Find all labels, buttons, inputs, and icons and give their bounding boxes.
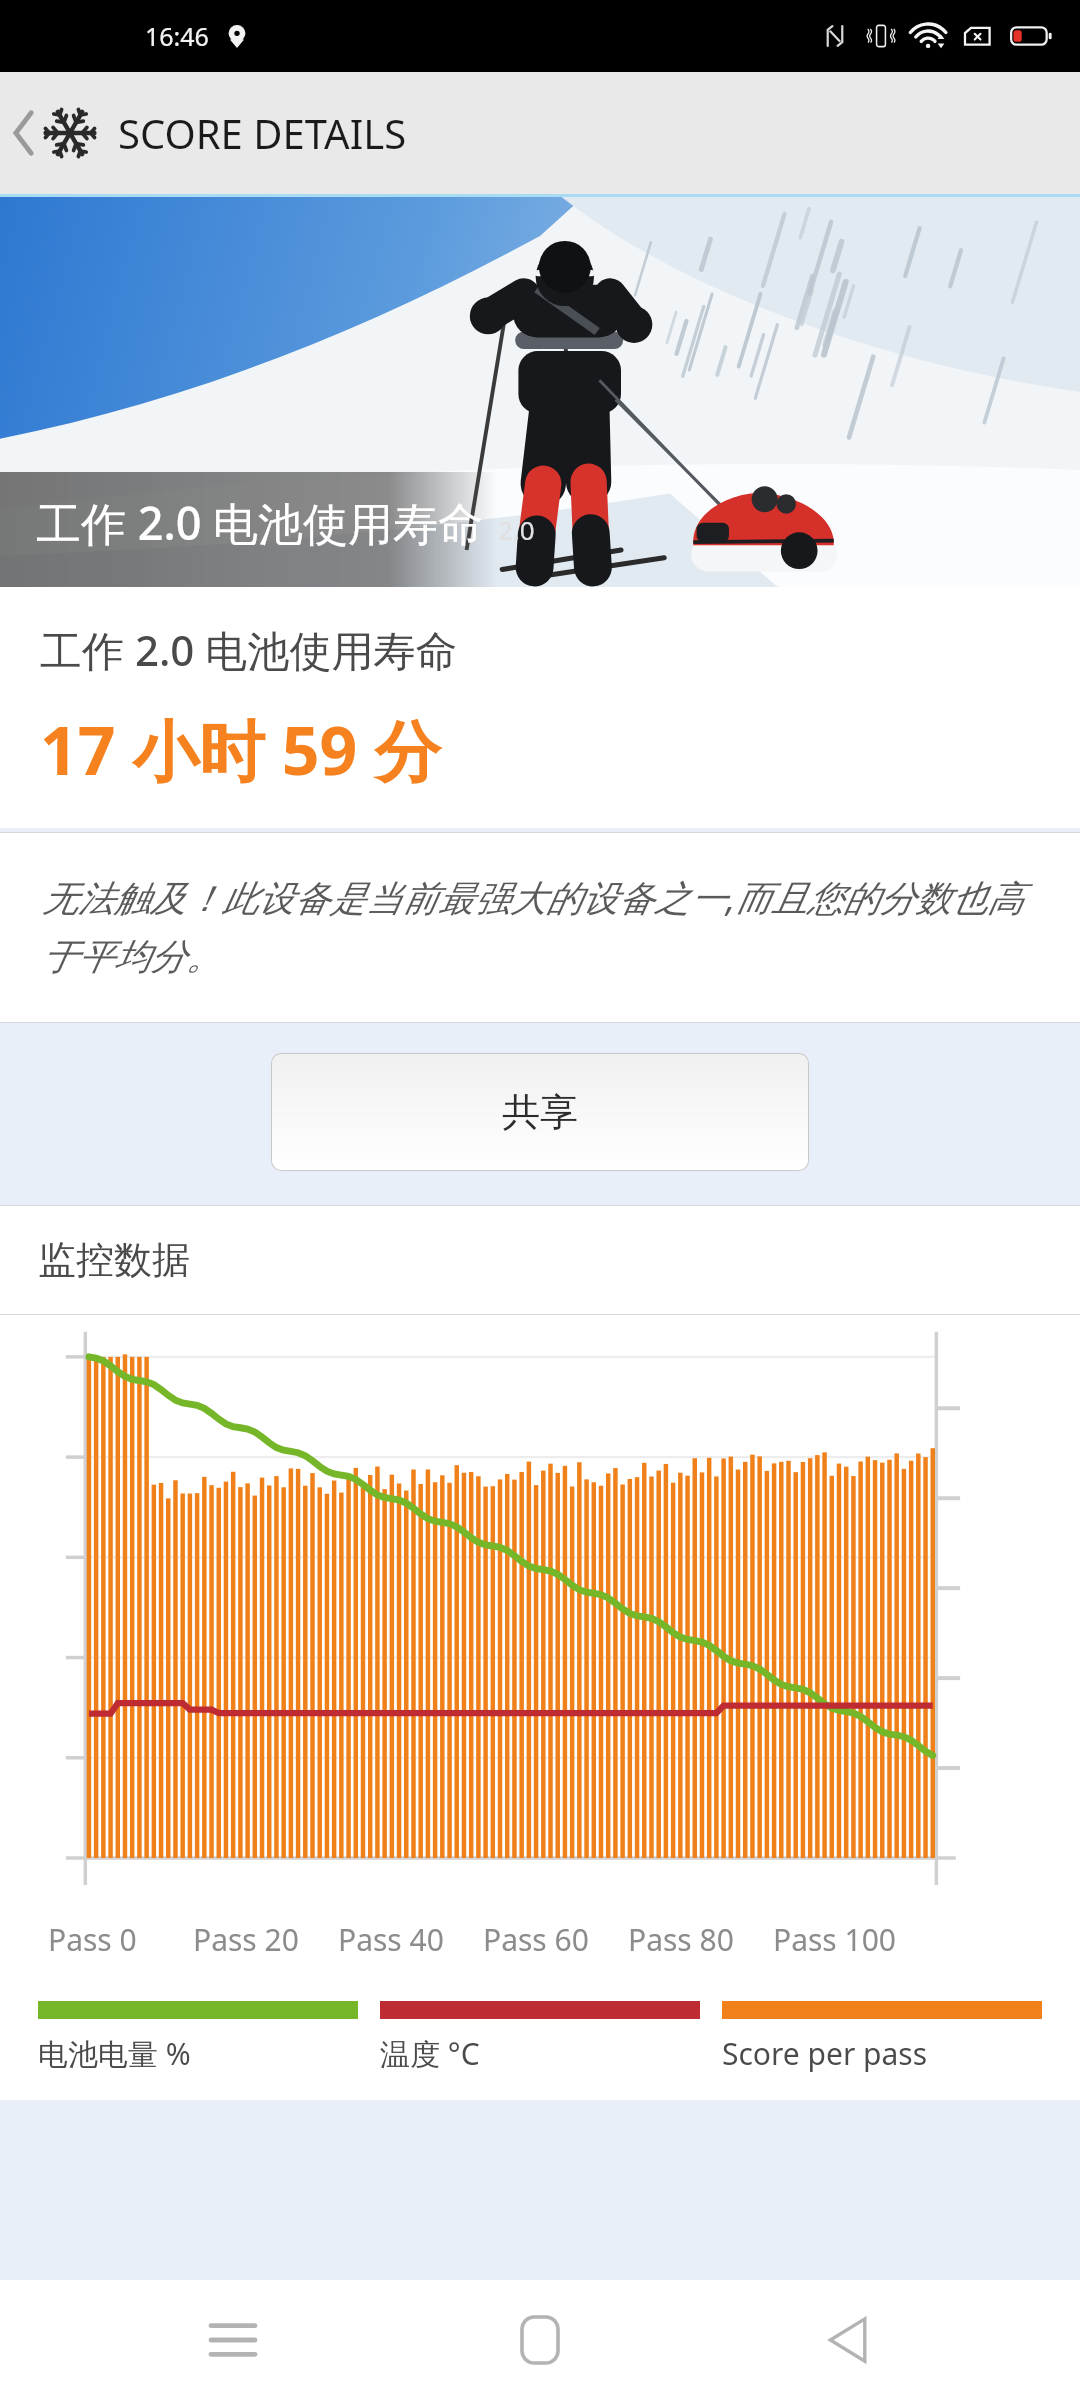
staticText: Pass 40 xyxy=(338,1919,444,1960)
staticText: 工作 2.0 电池使用寿命 xyxy=(36,492,484,553)
staticText: Score per pass xyxy=(722,2033,928,2074)
staticText: 电池电量 % xyxy=(38,2033,191,2074)
staticText: 共享 xyxy=(502,1088,578,1136)
staticText: Pass 60 xyxy=(483,1919,589,1960)
staticText: Pass 100 xyxy=(773,1919,896,1960)
button[interactable]: Recent apps xyxy=(158,2280,308,2400)
staticText: SCORE DETAILS xyxy=(118,106,407,160)
staticText: 无法触及！此设备是当前最强大的设备之一,而且您的分数也高于平均分。 xyxy=(42,873,1038,980)
staticText: 17 小时 59 分 xyxy=(40,704,441,794)
button[interactable]: Home xyxy=(465,2280,615,2400)
button[interactable]: Back to score xyxy=(0,72,1080,194)
staticText: Pass 80 xyxy=(628,1919,734,1960)
button[interactable]: 共享 xyxy=(271,1053,809,1171)
staticText: 工作 2.0 电池使用寿命 xyxy=(40,621,458,678)
button[interactable]: Work 2.0 battery life test xyxy=(0,197,1080,587)
staticText: 2.0 xyxy=(498,512,535,547)
staticText: Pass 0 xyxy=(48,1919,137,1960)
button[interactable]: Back xyxy=(773,2280,923,2400)
staticText: 温度 °C xyxy=(380,2033,480,2074)
staticText: 监控数据 xyxy=(38,1236,190,1284)
staticText: Pass 20 xyxy=(193,1919,299,1960)
staticText: 16:46 xyxy=(145,19,209,53)
